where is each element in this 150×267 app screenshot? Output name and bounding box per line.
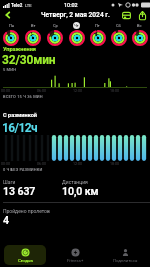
staticText: Tele2 — [11, 3, 23, 8]
staticText: Вт — [31, 23, 36, 28]
staticText: 00:00 — [1, 89, 10, 93]
staticText: 0 Ч БЕЗ РАЗМИНКИ — [3, 167, 43, 172]
staticText: 16/12ч — [2, 121, 38, 135]
staticText: 12:00 — [73, 162, 82, 166]
staticText: С разминкой — [3, 112, 38, 119]
staticText: 06:00 — [37, 162, 46, 166]
button[interactable]: Пт — [87, 22, 108, 46]
button[interactable]: Вс — [129, 22, 150, 46]
staticText: Вс — [137, 23, 142, 28]
button[interactable]: Чт — [66, 22, 87, 46]
staticText: 18:00 — [110, 162, 119, 166]
button[interactable]: Calendar — [118, 8, 134, 22]
button[interactable]: Fitness+ — [54, 245, 96, 265]
staticText: 06:00 — [37, 89, 46, 93]
button[interactable]: Поделиться — [104, 245, 146, 265]
staticText: Сводка — [18, 258, 33, 263]
button[interactable]: Вт — [22, 22, 44, 46]
staticText: Пн — [9, 23, 15, 28]
staticText: Шаги — [3, 179, 16, 185]
staticText: Дистанция — [62, 179, 88, 185]
button[interactable]: Пн — [0, 22, 22, 46]
staticText: 00:00 — [1, 162, 10, 166]
staticText: 13 637 — [3, 185, 36, 197]
staticText: Ср — [53, 23, 58, 28]
button[interactable]: Сводка — [4, 245, 46, 265]
staticText: Поделиться — [113, 258, 138, 263]
staticText: 4 — [3, 214, 10, 226]
staticText: 10,0 км — [62, 185, 99, 197]
staticText: Сб — [116, 23, 121, 28]
staticText: 32/30мин — [2, 53, 56, 67]
button[interactable]: Back — [0, 8, 16, 22]
staticText: 12:00 — [73, 89, 82, 93]
staticText: 10:02 — [64, 2, 78, 8]
staticText: Пт — [95, 23, 100, 28]
staticText: 18:00 — [110, 89, 119, 93]
staticText: ВСЕГО 15 Ч 36 МИН — [3, 94, 43, 99]
button[interactable]: Share — [134, 8, 150, 22]
staticText: Fitness+ — [67, 258, 84, 263]
button[interactable]: Ср — [44, 22, 66, 46]
staticText: Упражнения — [3, 46, 36, 53]
button[interactable]: Сб — [108, 22, 129, 46]
staticText: Чт — [74, 23, 79, 28]
staticText: Пройдено пролетов — [3, 208, 50, 214]
staticText: LTE — [25, 3, 32, 8]
staticText: Четверг, 2 мая 2024 г. — [41, 11, 110, 19]
staticText: 5 МИН — [3, 67, 17, 72]
